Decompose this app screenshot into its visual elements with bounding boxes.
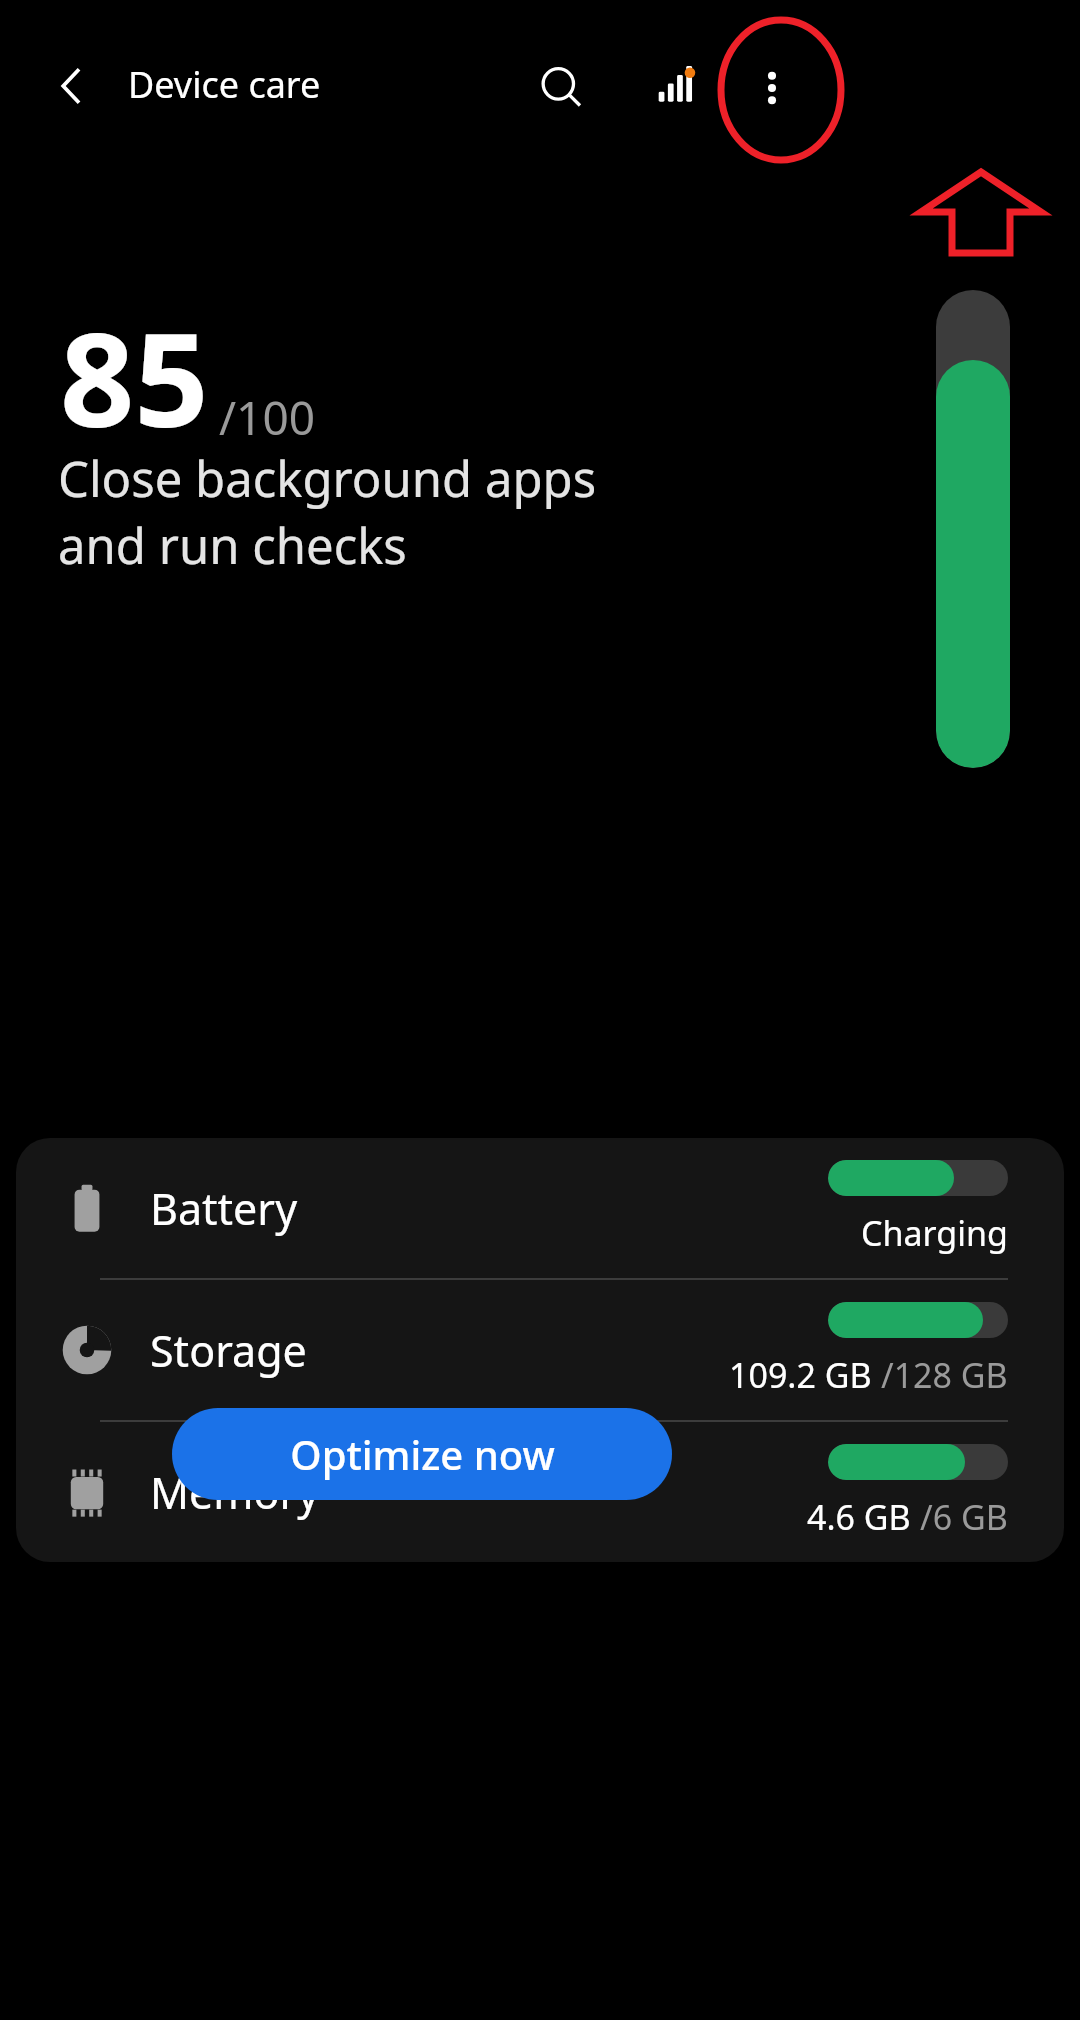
staticText: /6 GB xyxy=(920,1494,1008,1540)
staticText: Battery xyxy=(150,1179,298,1238)
staticText: Device care xyxy=(128,60,321,109)
staticText: Storage xyxy=(150,1321,307,1380)
button[interactable]: Memory xyxy=(16,1422,1064,1562)
button[interactable]: Storage xyxy=(16,1280,1064,1420)
staticText: 109.2 GB xyxy=(729,1352,881,1398)
staticText: 4.6 GB xyxy=(807,1494,920,1540)
button[interactable]: Battery xyxy=(16,1138,1064,1278)
button[interactable]: Back xyxy=(36,50,108,122)
button[interactable]: Search xyxy=(524,50,600,126)
button[interactable]: Diagnostics xyxy=(640,50,716,126)
staticText: /100 xyxy=(219,386,316,449)
staticText: Charging xyxy=(861,1210,1008,1256)
staticText: Memory xyxy=(150,1463,320,1522)
staticText: Optimize now xyxy=(290,1427,555,1481)
staticText: Close background apps and run checks xyxy=(58,445,718,578)
button[interactable]: More options xyxy=(730,46,814,130)
staticText: /128 GB xyxy=(881,1352,1008,1398)
button[interactable]: Optimize now xyxy=(172,1408,672,1500)
staticText: 85 xyxy=(60,288,209,465)
